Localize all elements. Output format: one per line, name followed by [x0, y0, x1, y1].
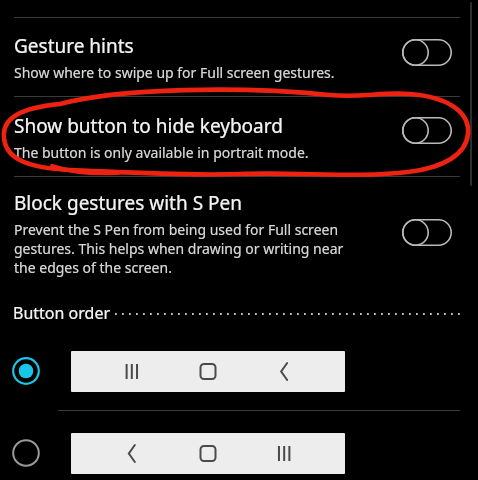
staticText: Gesture hints	[14, 33, 134, 59]
staticText: Show button to hide keyboard	[14, 113, 283, 139]
button[interactable]: Selected option	[4, 349, 48, 393]
staticText: Button order	[13, 302, 111, 324]
button[interactable]: Option	[4, 431, 48, 475]
button[interactable]: Toggle	[398, 215, 456, 249]
staticText: Block gestures with S Pen	[14, 190, 242, 216]
button[interactable]: Recents home back order	[71, 351, 345, 392]
button[interactable]: Show button to hide keyboard	[0, 97, 478, 176]
staticText: The button is only available in portrait…	[14, 143, 309, 162]
button[interactable]: Back home recents order	[71, 433, 345, 474]
button[interactable]: Gesture hints	[0, 18, 478, 96]
staticText: Show where to swipe up for Full screen g…	[14, 63, 335, 82]
button[interactable]: Block gestures with S Pen	[0, 177, 478, 282]
button[interactable]: Toggle	[398, 35, 456, 69]
button[interactable]: Toggle	[398, 113, 456, 147]
staticText: Prevent the S Pen from being used for Fu…	[14, 220, 358, 277]
